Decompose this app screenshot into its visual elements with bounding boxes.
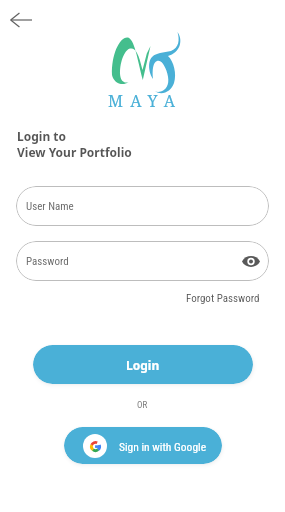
button[interactable]: Show password [237, 247, 265, 275]
staticText: Password [26, 255, 69, 268]
staticText: Login to [17, 128, 67, 144]
button[interactable]: Password [16, 241, 269, 281]
staticText: View Your Portfolio [17, 144, 132, 160]
staticText: Forgot Password [186, 292, 260, 305]
button[interactable]: Back [3, 2, 39, 38]
staticText: OR [137, 400, 148, 411]
button[interactable]: Login [33, 345, 253, 384]
button[interactable]: Forgot Password [184, 290, 262, 307]
staticText: User Name [26, 200, 74, 213]
staticText: Login [126, 357, 160, 373]
button[interactable]: Sign in with Google [64, 427, 222, 464]
staticText: MAYA [108, 90, 183, 112]
button[interactable]: User Name [16, 186, 269, 226]
staticText: Sign in with Google [119, 440, 207, 453]
